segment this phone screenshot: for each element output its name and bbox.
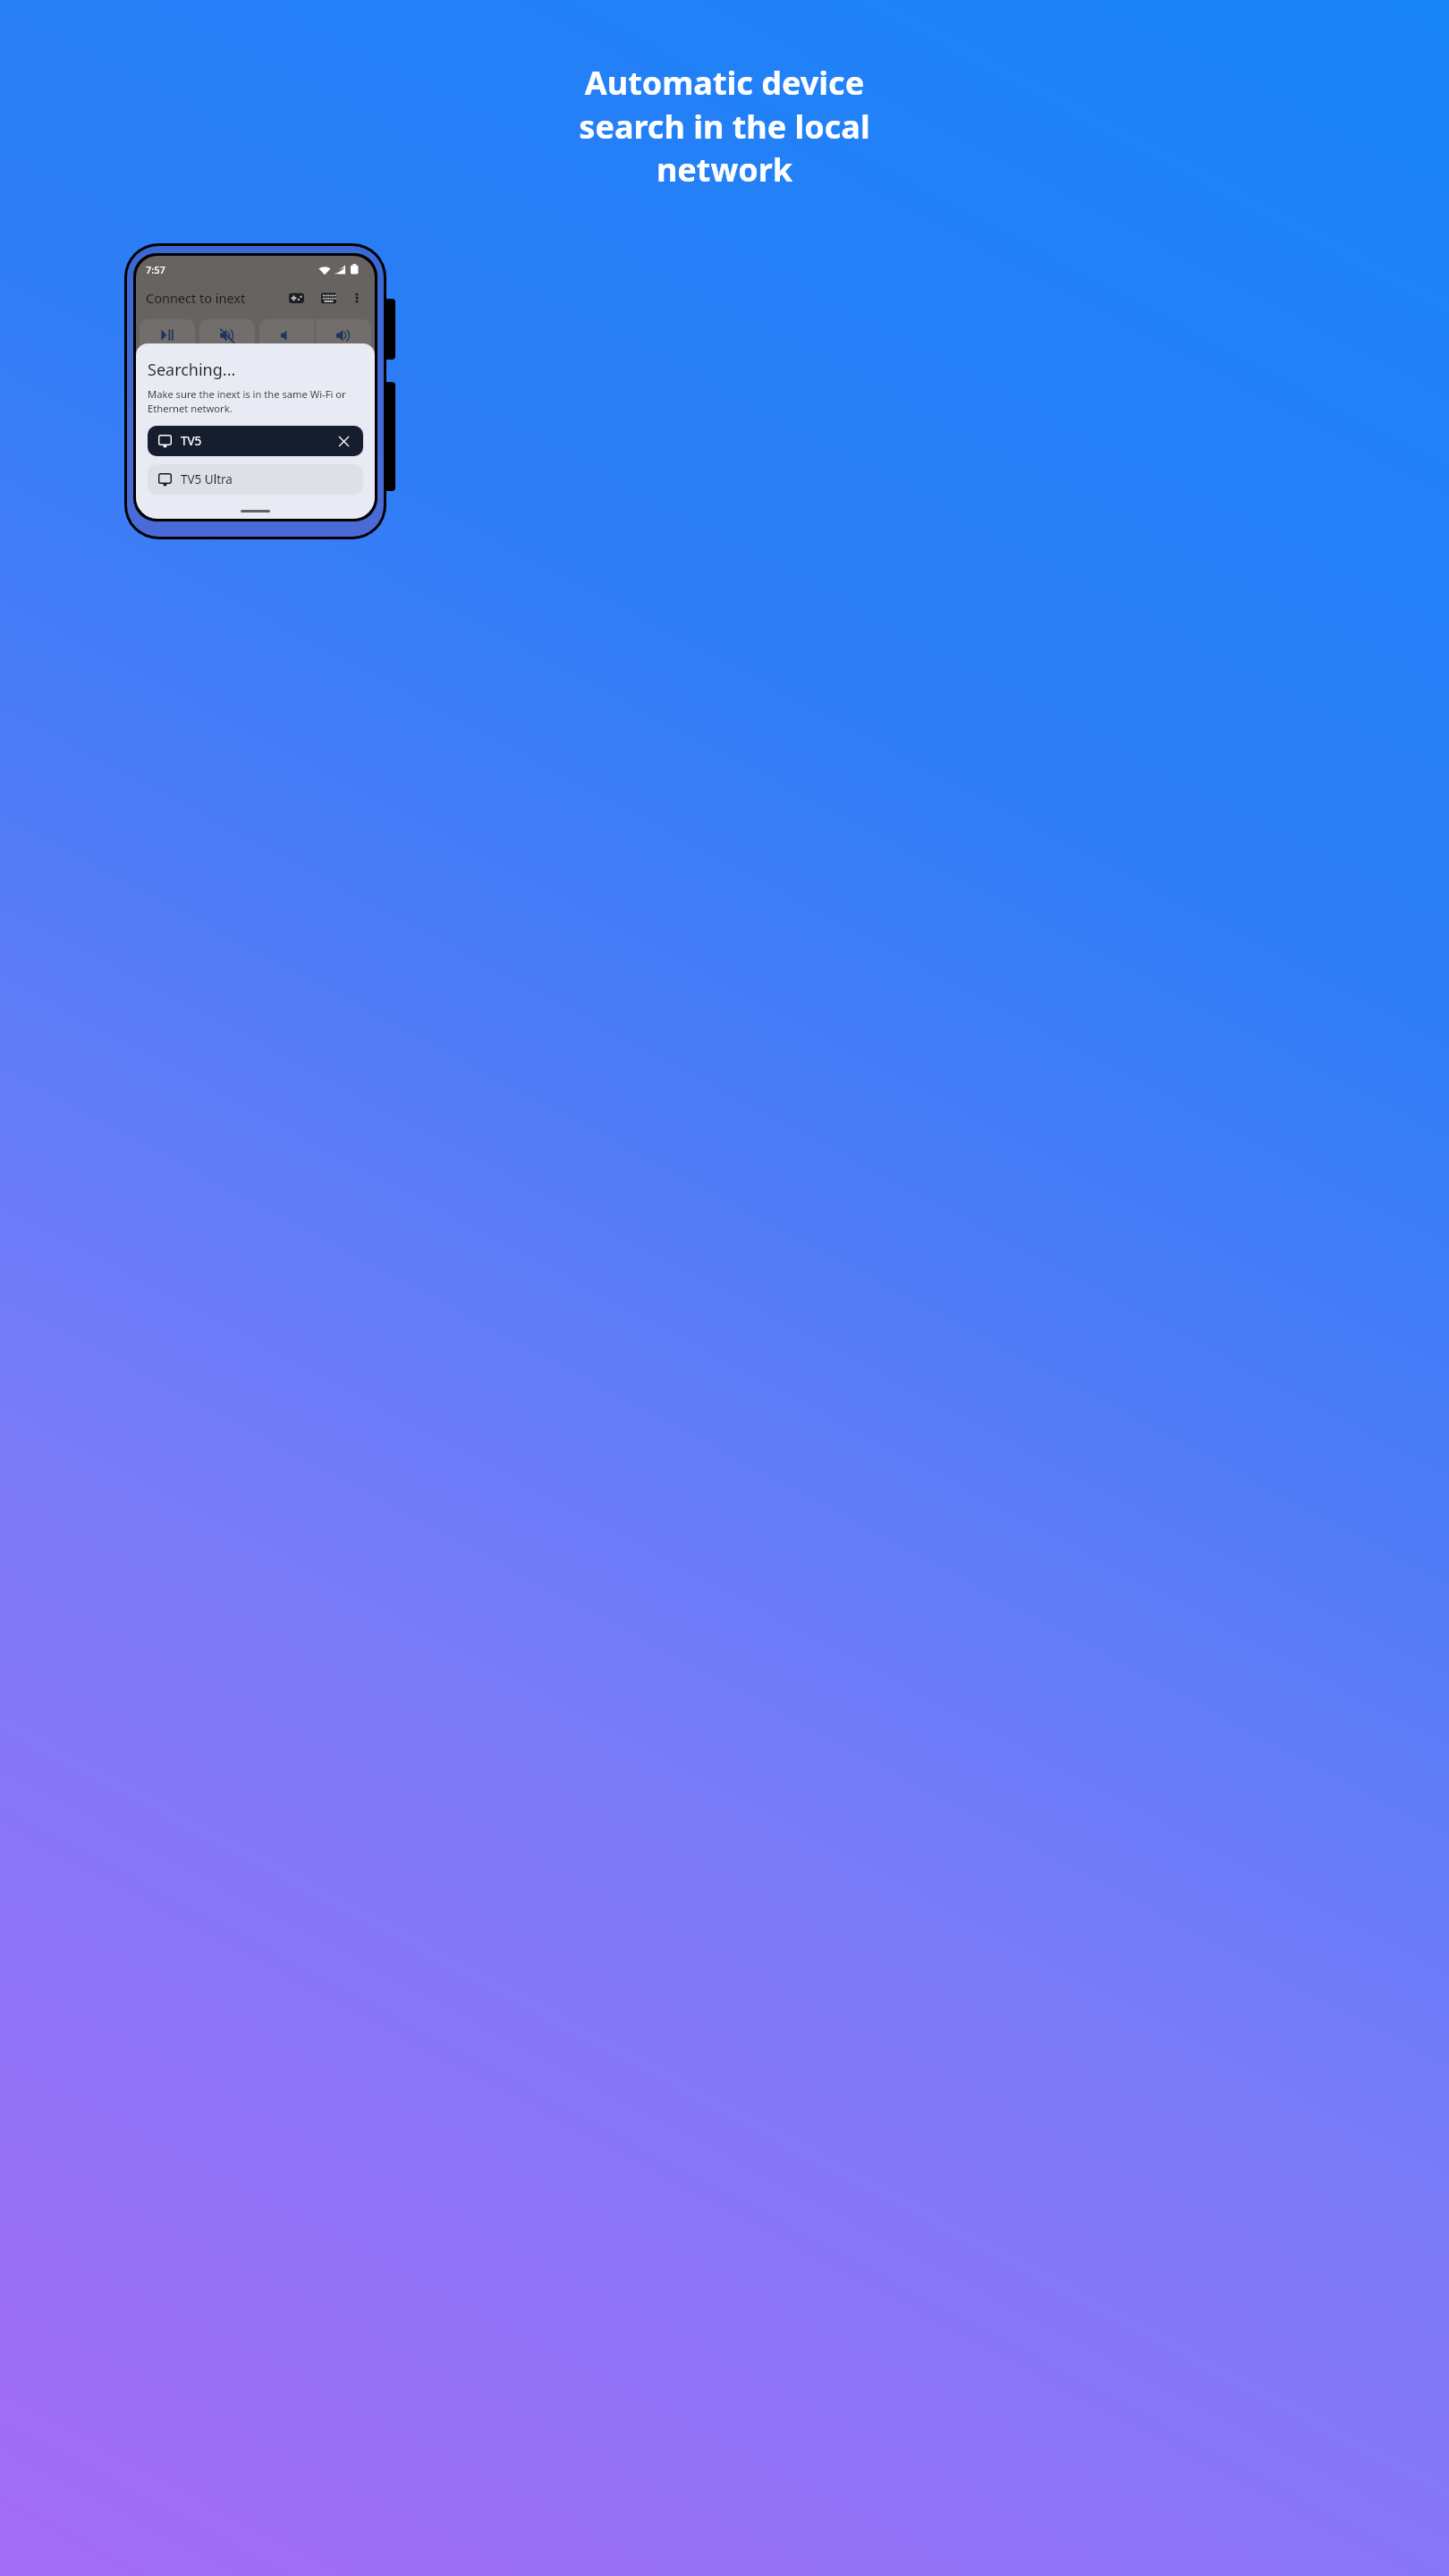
button[interactable]: Volume up: [316, 319, 371, 351]
staticText: TV5 Ultra: [181, 471, 233, 487]
staticText: Automatic device search in the local net…: [36, 61, 1413, 191]
button[interactable]: Volume down: [259, 319, 315, 351]
staticText: TV5: [181, 433, 202, 449]
staticText: Connect to inext: [146, 289, 246, 307]
button[interactable]: More options: [344, 285, 369, 310]
button[interactable]: TV5 Ultra: [148, 464, 363, 495]
button[interactable]: Cancel: [335, 432, 352, 450]
button[interactable]: Keyboard: [315, 284, 342, 311]
button[interactable]: TV5: [148, 426, 363, 456]
button[interactable]: Play or pause: [140, 319, 195, 351]
button[interactable]: Mute: [199, 319, 255, 351]
button[interactable]: Gamepad: [283, 284, 309, 311]
staticText: Searching...: [148, 359, 236, 381]
staticText: 7:57: [146, 263, 165, 276]
button[interactable]: Select: [238, 419, 274, 454]
staticText: Make sure the inext is in the same Wi-Fi…: [148, 387, 363, 415]
